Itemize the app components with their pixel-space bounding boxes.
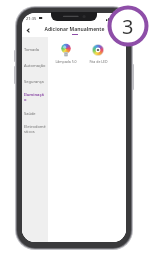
staticText: Iluminação (24, 92, 46, 102)
button[interactable]: Tomada (22, 41, 48, 57)
staticText: Eletrodomésticos (24, 124, 46, 134)
staticText: Adicionar Manualmente (44, 26, 105, 33)
button[interactable]: Eletrodomésticos (22, 121, 48, 137)
button[interactable]: Fita de LED (85, 42, 111, 65)
button[interactable]: Back (22, 24, 34, 36)
button[interactable]: Segurança (22, 73, 48, 89)
button[interactable]: Automação (22, 57, 48, 73)
other: Step 3 (107, 5, 149, 47)
staticText: 21:35 (26, 16, 37, 21)
staticText: Fita de LED (89, 59, 108, 64)
staticText: 3 (122, 13, 134, 40)
button[interactable]: Saúde (22, 105, 48, 121)
staticText: Automação (24, 63, 46, 68)
staticText: Tomada (24, 47, 40, 52)
staticText: Lâmpada 5.0 (55, 59, 77, 64)
staticText: Segurança (24, 79, 44, 84)
button[interactable]: Lâmpada 5.0 (53, 42, 79, 65)
button[interactable]: Iluminação (22, 89, 48, 105)
staticText: Saúde (24, 111, 36, 116)
button[interactable]: Scan (114, 24, 126, 36)
